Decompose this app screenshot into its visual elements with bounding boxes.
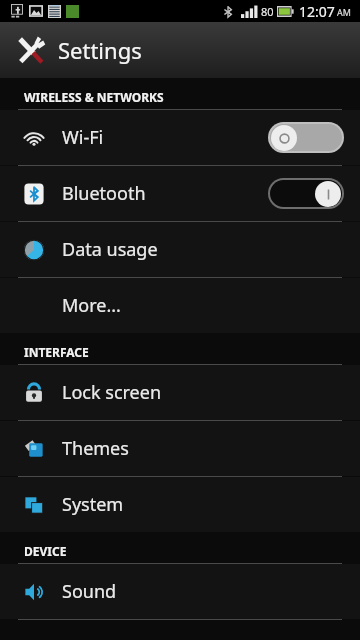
staticText: 80: [261, 4, 274, 19]
staticText: Themes: [62, 436, 129, 461]
staticText: More...: [62, 293, 121, 318]
button[interactable]: Wi-Fi: [0, 110, 360, 165]
button[interactable]: Toggle on: [270, 180, 342, 207]
button[interactable]: Settings: [0, 22, 360, 78]
button[interactable]: System: [0, 477, 360, 532]
staticText: Data usage: [62, 237, 158, 262]
button[interactable]: Data usage: [0, 222, 360, 277]
staticText: WIRELESS & NETWORKS: [24, 89, 164, 105]
staticText: Bluetooth: [62, 181, 146, 206]
staticText: DEVICE: [24, 543, 67, 559]
staticText: Wi-Fi: [62, 125, 104, 150]
button[interactable]: Sound: [0, 564, 360, 619]
staticText: Lock screen: [62, 380, 162, 405]
button[interactable]: More...: [0, 278, 360, 333]
staticText: System: [62, 492, 124, 517]
staticText: Settings: [58, 35, 142, 65]
button[interactable]: Lock screen: [0, 365, 360, 420]
staticText: 12:07: [299, 2, 335, 21]
button[interactable]: Themes: [0, 421, 360, 476]
button[interactable]: Bluetooth: [0, 166, 360, 221]
staticText: AM: [337, 6, 351, 18]
button[interactable]: Toggle off: [270, 124, 342, 151]
staticText: INTERFACE: [24, 344, 89, 360]
staticText: Sound: [62, 579, 117, 604]
